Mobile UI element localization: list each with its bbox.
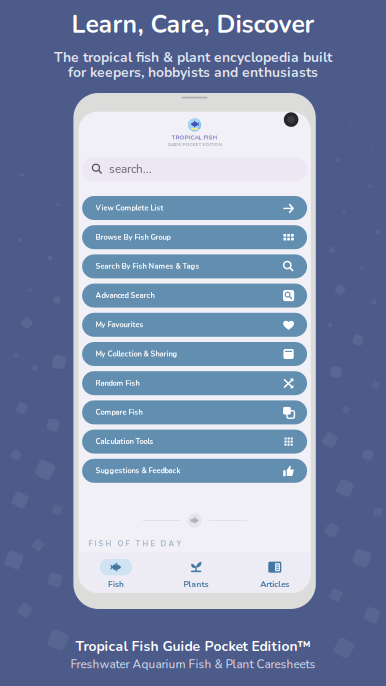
button[interactable]: View Complete List — [82, 196, 307, 220]
staticText: TROPICAL FISH — [172, 133, 218, 142]
staticText: Calculation Tools — [95, 436, 153, 447]
staticText: The tropical fish & plant encyclopedia b… — [54, 48, 332, 67]
staticText: for keepers, hobbyists and enthusiasts — [68, 63, 318, 82]
staticText: Browse By Fish Group — [95, 232, 170, 242]
button[interactable]: Browse By Fish Group — [82, 225, 307, 249]
staticText: Fish — [108, 579, 124, 590]
staticText: Learn, Care, Discover — [71, 8, 314, 41]
staticText: GUIDE POCKET EDITION — [168, 141, 222, 148]
button[interactable]: Random Fish — [82, 371, 307, 395]
staticText: search... — [109, 161, 152, 177]
button[interactable]: Calculation Tools — [82, 430, 307, 454]
staticText: Plants — [184, 579, 209, 590]
staticText: My Favourites — [95, 320, 143, 330]
button[interactable]: Compare Fish — [82, 400, 307, 424]
button[interactable]: Articles — [239, 553, 311, 593]
button[interactable]: Advanced Search — [82, 284, 307, 308]
staticText: Tropical Fish Guide Pocket Edition™ — [75, 637, 310, 656]
staticText: Random Fish — [95, 378, 139, 388]
staticText: Compare Fish — [95, 407, 142, 417]
staticText: Search By Fish Names & Tags — [95, 261, 199, 271]
button[interactable]: My Collection & Sharing — [82, 342, 307, 366]
button[interactable]: Suggestions & Feedback — [82, 459, 307, 483]
staticText: Advanced Search — [95, 290, 154, 301]
staticText: My Collection & Sharing — [95, 349, 177, 359]
button[interactable]: My Favourites — [82, 313, 307, 337]
staticText: Freshwater Aquarium Fish & Plant Careshe… — [70, 656, 315, 672]
staticText: Suggestions & Feedback — [95, 466, 180, 476]
button[interactable]: Plants — [153, 553, 239, 593]
staticText: View Complete List — [95, 203, 163, 213]
button[interactable]: Search By Fish Names & Tags — [82, 254, 307, 278]
staticText: F I S H O F T H E D A Y — [88, 539, 181, 549]
staticText: Articles — [260, 579, 289, 590]
button[interactable]: Fish — [78, 553, 153, 593]
